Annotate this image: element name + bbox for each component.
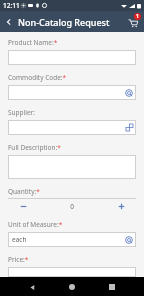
button[interactable]	[8, 267, 136, 277]
staticText: Price:*	[8, 255, 29, 264]
staticText: Full Description:*	[8, 143, 61, 152]
staticText: 0	[38, 202, 106, 211]
button[interactable]: Home	[64, 279, 80, 295]
button[interactable]	[8, 120, 136, 135]
button[interactable]	[8, 50, 136, 65]
staticText: Quantity:*	[8, 187, 40, 196]
button[interactable]: Cart	[123, 12, 142, 31]
staticText: Non-Catalog Request	[18, 16, 110, 28]
button[interactable]	[8, 85, 136, 100]
button[interactable]: Decrease quantity	[8, 199, 38, 213]
button[interactable]: each	[8, 232, 136, 247]
staticText: 12:11	[3, 1, 20, 10]
button[interactable]: Back	[24, 279, 40, 295]
button[interactable]	[8, 155, 136, 179]
staticText: 1	[136, 13, 139, 20]
staticText: Product Name:*	[8, 38, 58, 47]
button[interactable]: Increase quantity	[106, 199, 136, 213]
staticText: Unit of Measure:*	[8, 220, 63, 229]
button[interactable]: Back	[0, 13, 18, 31]
staticText: each	[12, 235, 27, 244]
staticText: Commodity Code:*	[8, 73, 67, 82]
staticText: Supplier:	[8, 108, 36, 117]
button[interactable]: Recent apps	[104, 279, 120, 295]
